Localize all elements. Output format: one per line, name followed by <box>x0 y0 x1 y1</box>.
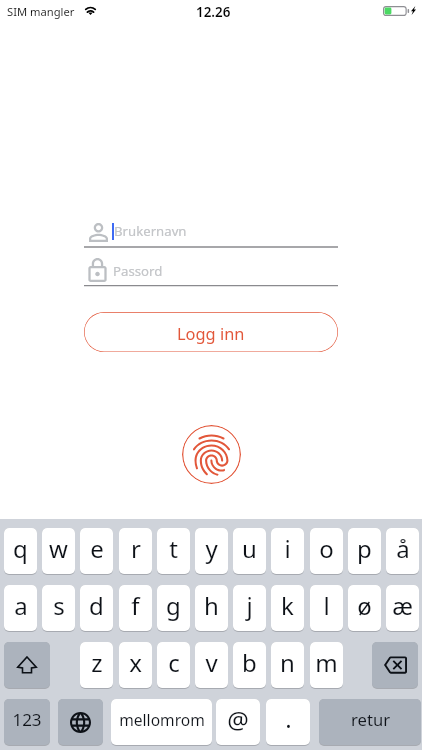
button[interactable]: m <box>310 642 343 688</box>
staticText: u <box>242 532 257 565</box>
button[interactable]: s <box>42 585 75 631</box>
button[interactable]: d <box>80 585 113 631</box>
staticText: æ <box>392 589 413 622</box>
staticText: y <box>205 532 218 565</box>
button[interactable]: Passord <box>84 257 338 285</box>
staticText: mellomrom <box>119 709 205 730</box>
staticText: d <box>89 589 104 622</box>
staticText: n <box>280 646 295 679</box>
staticText: retur <box>351 708 390 731</box>
staticText: å <box>396 532 410 565</box>
staticText: v <box>205 646 218 679</box>
button[interactable]: 123 <box>4 699 50 745</box>
button[interactable]: t <box>157 528 190 574</box>
button[interactable]: Bytt tastatur <box>58 699 103 745</box>
staticText: g <box>166 589 181 622</box>
staticText: s <box>53 589 65 622</box>
staticText: SIM mangler <box>7 4 75 19</box>
button[interactable]: c <box>157 642 190 688</box>
staticText: ø <box>357 589 372 622</box>
button[interactable]: i <box>271 528 304 574</box>
button[interactable]: Logg inn <box>84 312 338 352</box>
button[interactable]: z <box>80 642 113 688</box>
staticText: @ <box>227 703 249 736</box>
staticText: e <box>90 532 104 565</box>
button[interactable]: v <box>195 642 228 688</box>
button[interactable]: å <box>386 528 419 574</box>
button[interactable]: ø <box>348 585 381 631</box>
staticText: 12.26 <box>196 3 231 21</box>
staticText: b <box>242 646 257 679</box>
button[interactable]: g <box>157 585 190 631</box>
button[interactable]: x <box>119 642 152 688</box>
staticText: h <box>204 589 219 622</box>
button[interactable]: n <box>271 642 304 688</box>
button[interactable]: y <box>195 528 228 574</box>
staticText: c <box>168 646 180 679</box>
staticText: Passord <box>113 262 163 280</box>
button[interactable]: q <box>4 528 37 574</box>
staticText: z <box>91 646 103 679</box>
staticText: f <box>131 589 140 622</box>
button[interactable]: retur <box>319 699 421 745</box>
button[interactable]: Brukernavn <box>84 218 338 247</box>
button[interactable]: Shift <box>4 642 50 688</box>
staticText: x <box>129 646 142 679</box>
button[interactable]: h <box>195 585 228 631</box>
staticText: t <box>169 532 178 565</box>
staticText: m <box>315 646 338 679</box>
staticText: j <box>246 589 253 622</box>
staticText: l <box>323 589 330 622</box>
button[interactable]: r <box>119 528 152 574</box>
staticText: i <box>284 532 291 565</box>
button[interactable]: k <box>271 585 304 631</box>
button[interactable]: æ <box>386 585 419 631</box>
staticText: 123 <box>12 708 42 731</box>
staticText: o <box>319 532 334 565</box>
staticText: w <box>49 532 68 565</box>
button[interactable]: b <box>233 642 266 688</box>
button[interactable]: j <box>233 585 266 631</box>
button[interactable]: @ <box>216 699 260 745</box>
staticText: Logg inn <box>177 322 245 344</box>
button[interactable]: u <box>233 528 266 574</box>
staticText: q <box>13 532 28 565</box>
button[interactable]: Logg inn med fingeravtrykk <box>182 425 241 484</box>
staticText: r <box>131 532 141 565</box>
button[interactable]: Slett <box>372 642 418 688</box>
staticText: p <box>357 532 372 565</box>
staticText: k <box>281 589 294 622</box>
button[interactable]: w <box>42 528 75 574</box>
button[interactable]: a <box>4 585 37 631</box>
button[interactable]: . <box>266 699 310 745</box>
button[interactable]: e <box>80 528 113 574</box>
staticText: Brukernavn <box>114 222 187 240</box>
button[interactable]: o <box>310 528 343 574</box>
button[interactable]: f <box>119 585 152 631</box>
button[interactable]: l <box>310 585 343 631</box>
button[interactable]: mellomrom <box>111 699 212 745</box>
button[interactable]: p <box>348 528 381 574</box>
staticText: . <box>285 702 292 735</box>
staticText: a <box>14 589 28 622</box>
